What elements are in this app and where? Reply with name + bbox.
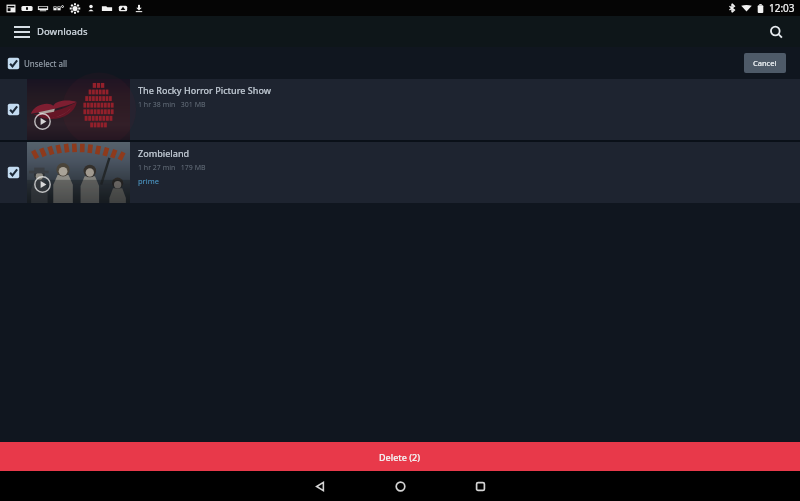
button[interactable]: Play Zombieland: [34, 176, 51, 193]
button[interactable]: Open navigation menu: [9, 19, 35, 45]
button[interactable]: Back: [280, 471, 360, 501]
button[interactable]: Deselect Zombieland: [0, 142, 800, 203]
other: All items selected: [7, 57, 20, 70]
button[interactable]: Recent apps: [440, 471, 520, 501]
button[interactable]: Deselect Zombieland: [7, 166, 20, 179]
button[interactable]: Play The Rocky Horror Picture Show: [34, 113, 51, 130]
staticText: 1 hr 38 min 301 MB: [138, 100, 206, 110]
staticText: Unselect all: [24, 58, 68, 69]
staticText: Delete (2): [379, 451, 421, 463]
button[interactable]: Home: [360, 471, 440, 501]
staticText: Downloads: [37, 25, 88, 38]
staticText: Zombieland: [138, 147, 190, 159]
button[interactable]: Deselect The Rocky Horror Picture Show: [7, 103, 20, 116]
button[interactable]: Deselect The Rocky Horror Picture Show: [0, 79, 800, 140]
other: Deselect The Rocky Horror Picture Show: [7, 103, 20, 116]
staticText: The Rocky Horror Picture Show: [138, 84, 271, 96]
other: Deselect Zombieland: [7, 166, 20, 179]
staticText: Cancel: [753, 58, 777, 68]
button[interactable]: All items selected: [7, 57, 68, 70]
staticText: 1 hr 27 min 179 MB: [138, 163, 206, 173]
button[interactable]: Delete (2): [0, 442, 800, 471]
button[interactable]: Search: [762, 18, 790, 46]
staticText: 12:03: [769, 1, 795, 15]
button[interactable]: Cancel: [744, 53, 786, 73]
staticText: prime: [138, 176, 159, 186]
